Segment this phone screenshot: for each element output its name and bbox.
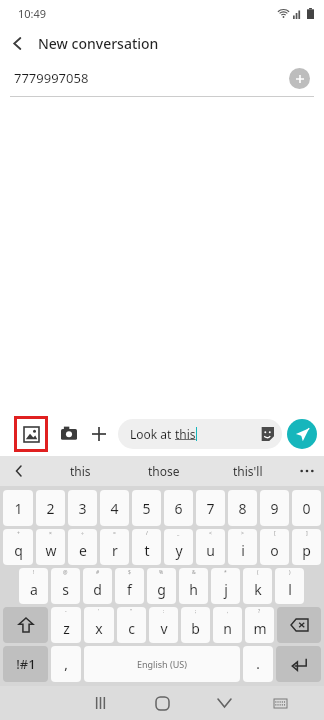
staticText: those [148, 463, 180, 479]
staticText: # [96, 569, 100, 576]
button[interactable]: 5 [132, 490, 161, 526]
button[interactable]: ) [275, 568, 304, 604]
button[interactable]: this [38, 456, 122, 486]
staticText: h [189, 580, 198, 599]
button[interactable]: < [196, 529, 225, 565]
button[interactable]: More options [84, 419, 114, 449]
button[interactable]: 8 [228, 490, 257, 526]
staticText: 3 [78, 499, 87, 518]
button[interactable]: ] [292, 529, 321, 565]
staticText: . [256, 655, 260, 673]
staticText: 4 [110, 499, 119, 518]
button[interactable]: , [213, 607, 242, 643]
button[interactable]: " [117, 607, 146, 643]
staticText: - [65, 608, 67, 615]
staticText: p [302, 541, 311, 560]
button[interactable]: Send [287, 419, 317, 449]
button[interactable]: Back [0, 26, 34, 60]
button[interactable]: _ [164, 529, 193, 565]
button[interactable]: . [243, 646, 273, 682]
staticText: n [223, 619, 232, 638]
button[interactable]: Home [131, 686, 193, 720]
button[interactable]: Shift [3, 607, 48, 643]
staticText: ( [257, 569, 259, 576]
button[interactable]: Gallery [14, 416, 48, 452]
staticText: _ [177, 530, 180, 537]
button[interactable]: % [147, 568, 176, 604]
staticText: y [175, 541, 183, 560]
button[interactable]: - [51, 607, 81, 643]
staticText: New conversation [38, 34, 159, 53]
staticText: × [49, 530, 52, 537]
staticText: q [14, 541, 23, 560]
button[interactable]: More suggestions [290, 456, 324, 486]
button[interactable]: ( [243, 568, 272, 604]
staticText: , [64, 655, 68, 673]
button[interactable]: this'll [206, 456, 290, 486]
staticText: : [163, 608, 165, 615]
button[interactable]: = [100, 529, 129, 565]
button[interactable]: ! [19, 568, 48, 604]
staticText: @ [63, 569, 68, 576]
staticText: b [191, 619, 200, 638]
staticText: ' [98, 608, 100, 615]
staticText: 5 [142, 499, 151, 518]
staticText: f [127, 580, 132, 599]
staticText: l [288, 580, 292, 599]
staticText: Look at [130, 426, 175, 442]
staticText: $ [128, 569, 131, 576]
button[interactable]: Camera [54, 419, 84, 449]
button[interactable]: : [149, 607, 178, 643]
button[interactable]: Look at [118, 419, 282, 449]
button[interactable]: 0 [292, 490, 321, 526]
staticText: ? [258, 608, 261, 615]
staticText: o [270, 541, 279, 560]
button[interactable]: Recents [69, 686, 131, 720]
button[interactable]: Add recipient [289, 68, 310, 89]
button[interactable]: 7 [196, 490, 225, 526]
button[interactable]: those [122, 456, 206, 486]
button[interactable]: Hide keyboard [193, 686, 255, 720]
button[interactable]: Previous suggestions [0, 456, 38, 486]
staticText: 9 [270, 499, 279, 518]
button[interactable]: # [83, 568, 112, 604]
button[interactable]: * [211, 568, 240, 604]
button[interactable]: 1 [3, 490, 33, 526]
button[interactable]: ? [245, 607, 274, 643]
button[interactable]: Enter [276, 646, 321, 682]
staticText: k [254, 580, 262, 599]
staticText: > [241, 530, 244, 537]
button[interactable]: Change keyboard [255, 686, 305, 720]
button[interactable]: ' [84, 607, 114, 643]
button[interactable]: 4 [100, 490, 129, 526]
staticText: English (US) [137, 658, 187, 670]
button[interactable]: $ [115, 568, 144, 604]
button[interactable]: / [132, 529, 161, 565]
button[interactable]: @ [51, 568, 80, 604]
staticText: s [62, 580, 69, 599]
staticText: i [241, 541, 245, 560]
staticText: [ [274, 530, 276, 537]
staticText: 1 [14, 499, 23, 518]
button[interactable]: 2 [36, 490, 65, 526]
staticText: x [95, 619, 103, 638]
button[interactable]: 6 [164, 490, 193, 526]
button[interactable]: + [3, 529, 33, 565]
button[interactable]: !#1 [3, 646, 48, 682]
button[interactable]: Backspace [277, 607, 321, 643]
staticText: a [30, 580, 38, 599]
button[interactable]: 3 [68, 490, 97, 526]
button[interactable]: & [179, 568, 208, 604]
button[interactable]: English (US) [84, 646, 240, 682]
button[interactable]: [ [260, 529, 289, 565]
staticText: u [206, 541, 215, 560]
button[interactable]: ÷ [68, 529, 97, 565]
button[interactable]: 9 [260, 490, 289, 526]
button[interactable]: Stickers [254, 421, 280, 447]
button[interactable]: > [228, 529, 257, 565]
button[interactable]: , [51, 646, 81, 682]
staticText: ] [306, 530, 308, 537]
staticText: 8 [238, 499, 247, 518]
button[interactable]: ; [181, 607, 210, 643]
button[interactable]: × [36, 529, 65, 565]
